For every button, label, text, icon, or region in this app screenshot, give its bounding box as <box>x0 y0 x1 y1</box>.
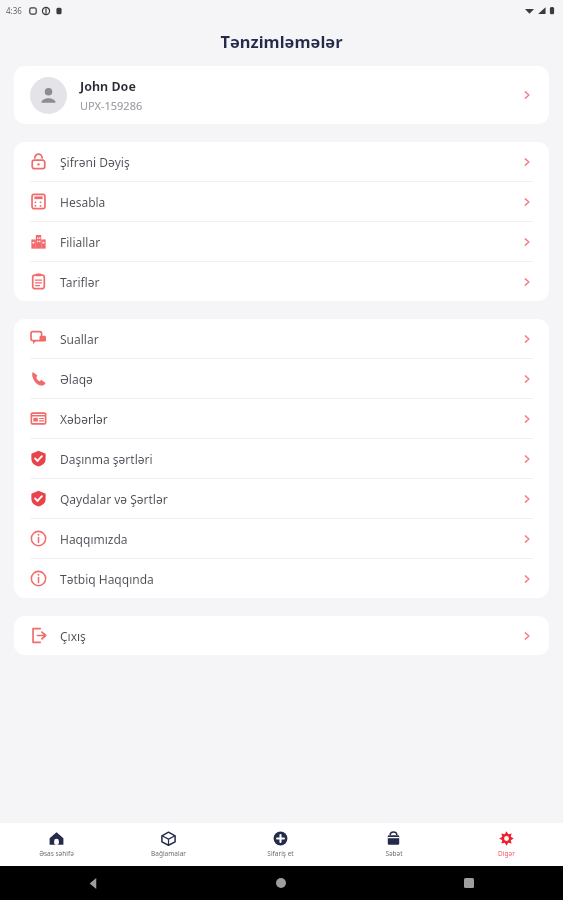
button[interactable]: Suallar <box>14 319 549 358</box>
button[interactable]: Daşınma şərtləri <box>14 439 549 478</box>
button[interactable]: Şifrəni Dəyiş <box>14 142 549 181</box>
button[interactable]: Hesabla <box>14 182 549 221</box>
staticText: Daşınma şərtləri <box>60 451 153 467</box>
staticText: John Doe <box>80 78 136 95</box>
staticText: Sifariş et <box>267 849 294 858</box>
staticText: Filiallar <box>60 234 101 250</box>
button[interactable]: Çıxış <box>14 616 549 655</box>
staticText: UPX-159286 <box>80 98 143 113</box>
button[interactable]: Filiallar <box>14 222 549 261</box>
button[interactable]: Sifariş et <box>224 823 337 866</box>
staticText: Digər <box>498 849 515 858</box>
staticText: Şifrəni Dəyiş <box>60 154 130 170</box>
staticText: Hesabla <box>60 194 106 210</box>
button[interactable]: Digər <box>450 823 563 866</box>
staticText: Haqqımızda <box>60 531 128 547</box>
staticText: Suallar <box>60 331 99 347</box>
button[interactable]: Əlaqə <box>14 359 549 398</box>
button[interactable]: Səbət <box>337 823 450 866</box>
staticText: Tətbiq Haqqında <box>60 571 154 587</box>
staticText: Əlaqə <box>60 371 93 387</box>
staticText: Çıxış <box>60 628 86 644</box>
button[interactable]: Qaydalar və Şərtlər <box>14 479 549 518</box>
staticText: Tənzimləmələr <box>220 30 343 52</box>
button[interactable]: Bağlamalar <box>112 823 224 866</box>
staticText: Tariflər <box>60 274 100 290</box>
button[interactable]: Xəbərlər <box>14 399 549 438</box>
button[interactable]: Haqqımızda <box>14 519 549 558</box>
staticText: Qaydalar və Şərtlər <box>60 491 168 507</box>
button[interactable]: Tətbiq Haqqında <box>14 559 549 598</box>
staticText: Əsas səhifə <box>39 849 74 858</box>
button[interactable]: Tariflər <box>14 262 549 301</box>
staticText: Səbət <box>385 849 403 858</box>
staticText: Xəbərlər <box>60 411 108 427</box>
button[interactable]: Əsas səhifə <box>0 823 112 866</box>
staticText: Bağlamalar <box>151 849 186 858</box>
staticText: 4:36 <box>6 5 22 16</box>
button[interactable]: John Doe <box>14 66 549 124</box>
